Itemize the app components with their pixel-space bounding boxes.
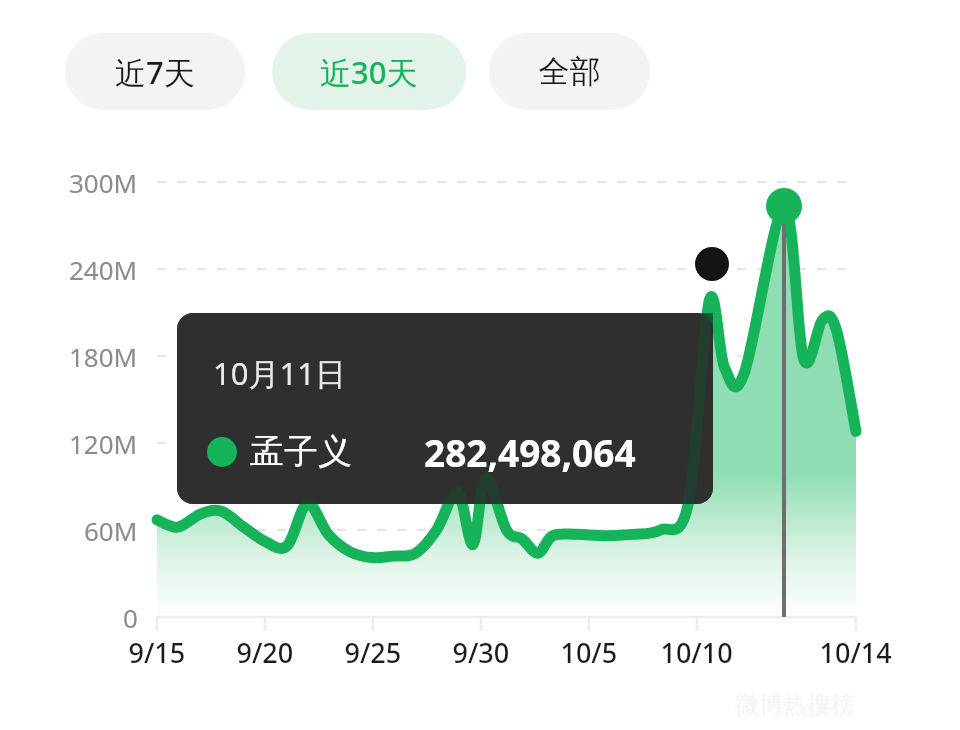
button[interactable]: Data point details for 10月11日 (177, 313, 713, 504)
button[interactable] (65, 33, 245, 110)
button[interactable] (489, 33, 650, 110)
button[interactable] (272, 33, 466, 110)
